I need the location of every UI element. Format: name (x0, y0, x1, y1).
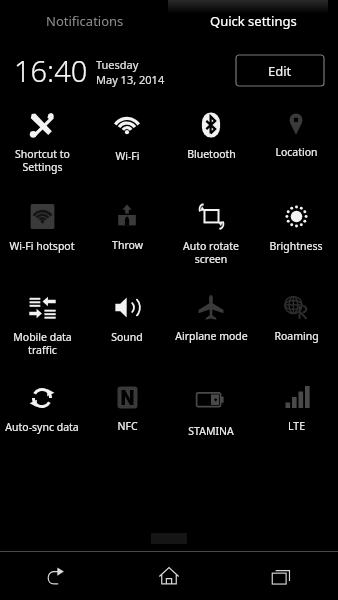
staticText: 16:40 (14, 51, 88, 90)
button[interactable]: Sound (85, 280, 169, 371)
staticText: Airplane mode (175, 329, 248, 343)
staticText: Edit (268, 62, 292, 80)
button[interactable]: NFC (85, 371, 169, 462)
button[interactable]: Location (254, 98, 338, 189)
button[interactable]: Notifications (0, 0, 169, 42)
staticText: Wi-Fi (115, 149, 140, 163)
staticText: Location (275, 145, 318, 159)
button[interactable]: Home (112, 552, 225, 600)
staticText: Throw (112, 238, 143, 252)
button[interactable]: LTE (254, 371, 338, 462)
staticText: Mobile data traffic (13, 330, 72, 357)
button[interactable]: Brightness (254, 189, 338, 280)
button[interactable]: Edit (236, 55, 324, 86)
button[interactable]: Throw (85, 189, 169, 280)
button[interactable]: Recent apps (225, 552, 338, 600)
staticText: NFC (117, 419, 138, 433)
staticText: Auto rotate screen (183, 239, 239, 266)
staticText: Roaming (274, 329, 319, 343)
button[interactable]: Quick settings (169, 0, 338, 42)
staticText: Notifications (46, 12, 124, 30)
staticText: Sound (111, 330, 143, 344)
button[interactable]: Mobile data traffic (0, 280, 84, 371)
button[interactable]: Wi-Fi hotspot (0, 189, 84, 280)
staticText: Quick settings (210, 12, 297, 30)
staticText: STAMINA (188, 424, 234, 438)
staticText: Shortcut to Settings (15, 147, 70, 174)
staticText: Brightness (269, 239, 323, 253)
staticText: Bluetooth (187, 147, 236, 161)
button[interactable]: Shortcut to Settings (0, 98, 84, 189)
staticText: Tuesday (96, 57, 139, 72)
button[interactable]: Bluetooth (169, 98, 253, 189)
staticText: Auto-sync data (5, 420, 79, 434)
button[interactable]: Back (0, 552, 112, 600)
button[interactable]: Auto-sync data (0, 371, 84, 462)
button[interactable]: STAMINA (169, 371, 253, 462)
button[interactable]: Roaming (254, 280, 338, 371)
button[interactable]: Wi-Fi (85, 98, 169, 189)
button[interactable]: Auto rotate screen (169, 189, 253, 280)
staticText: LTE (288, 419, 305, 433)
button[interactable]: Airplane mode (169, 280, 253, 371)
staticText: Wi-Fi hotspot (9, 239, 75, 253)
staticText: May 13, 2014 (96, 72, 165, 87)
